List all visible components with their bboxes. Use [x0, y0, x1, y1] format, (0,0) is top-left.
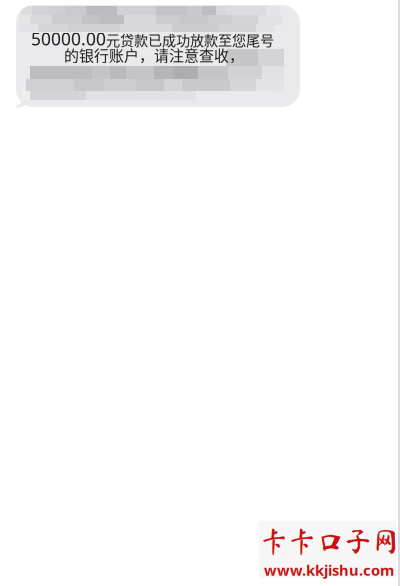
staticText: 卡卡口子网	[260, 527, 400, 555]
staticText: www.kkjishu.com	[264, 560, 394, 580]
staticText: 的银行账户，请注意查收，	[64, 44, 244, 66]
staticText: 50000.00	[31, 27, 106, 51]
staticText: 元贷款已成功放款至您尾号	[106, 29, 274, 50]
